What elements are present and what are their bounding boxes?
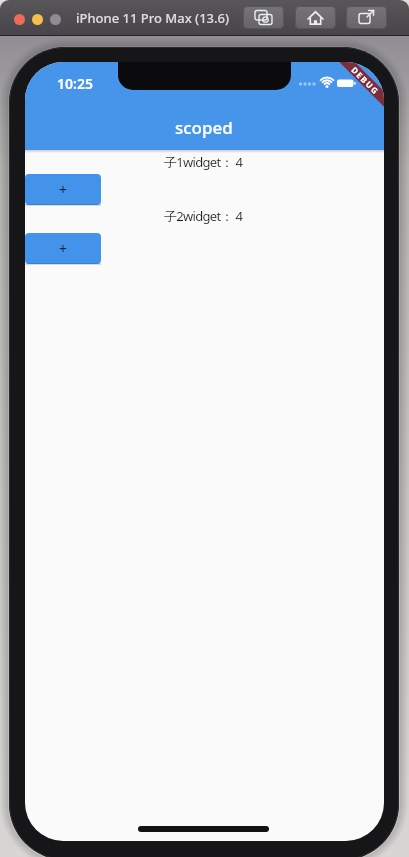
button[interactable] — [295, 6, 336, 29]
button[interactable]: + — [25, 174, 101, 205]
staticText: DEBUG — [349, 64, 382, 97]
staticText: + — [59, 239, 68, 258]
staticText: scoped — [175, 116, 233, 139]
staticText: 子2widget： 4 — [164, 207, 243, 225]
staticText: 10:25 — [57, 74, 93, 93]
button[interactable] — [346, 6, 387, 29]
button[interactable] — [32, 14, 43, 25]
staticText: + — [59, 180, 68, 199]
staticText: iPhone 11 Pro Max (13.6) — [76, 9, 230, 27]
button[interactable] — [243, 6, 284, 29]
button[interactable] — [50, 14, 61, 25]
staticText: 子1widget： 4 — [164, 153, 243, 171]
button[interactable] — [14, 14, 25, 25]
button[interactable]: + — [25, 233, 101, 264]
